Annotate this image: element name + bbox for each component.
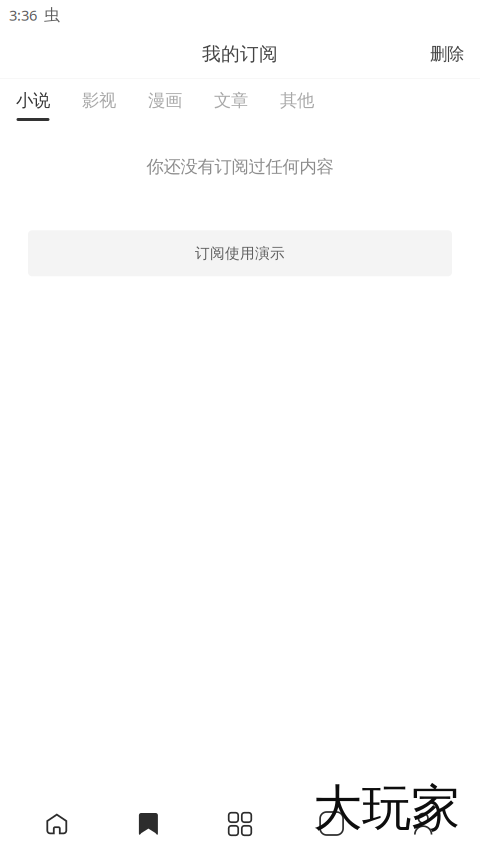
staticText: 订阅使用演示: [195, 244, 285, 262]
staticText: 小说: [16, 90, 50, 111]
staticText: 你还没有订阅过任何内容: [146, 156, 333, 177]
staticText: 漫画: [148, 90, 182, 111]
button[interactable]: 订阅使用演示: [28, 230, 452, 276]
staticText: 文章: [214, 90, 248, 111]
staticText: 影视: [82, 90, 116, 111]
button[interactable]: 删除: [414, 29, 480, 79]
button[interactable]: 影视: [66, 79, 132, 127]
button[interactable]: Bookmarks: [103, 797, 194, 853]
button[interactable]: 小说: [0, 79, 66, 127]
button[interactable]: 漫画: [132, 79, 198, 127]
button[interactable]: Home: [11, 797, 103, 853]
button[interactable]: Categories: [194, 797, 286, 853]
staticText: 删除: [430, 43, 464, 65]
button[interactable]: Library: [286, 797, 377, 853]
staticText: 虫: [44, 5, 60, 25]
staticText: 我的订阅: [202, 42, 278, 65]
button[interactable]: 其他: [264, 79, 330, 127]
button[interactable]: Account: [377, 797, 469, 853]
staticText: 3:36: [9, 5, 37, 25]
staticText: 大玩家: [313, 778, 460, 839]
staticText: 其他: [280, 90, 314, 111]
button[interactable]: 文章: [198, 79, 264, 127]
